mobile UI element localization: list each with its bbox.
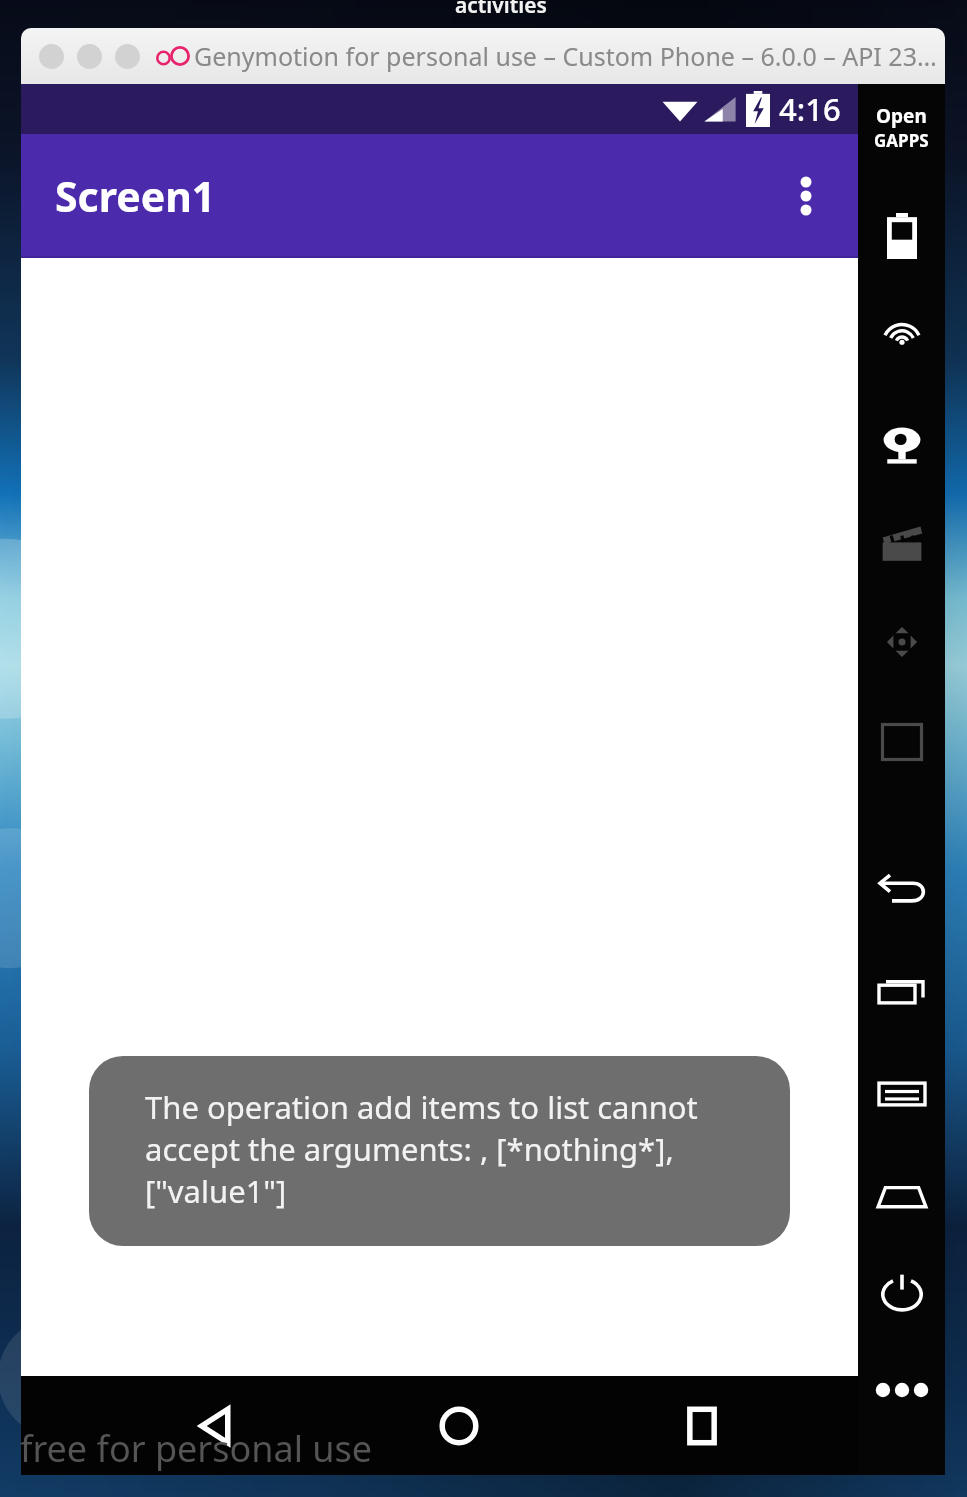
button[interactable]: Home [858,1170,945,1222]
staticText: 4:16 [779,88,841,130]
button[interactable]: GPS [858,320,945,372]
button[interactable] [115,44,140,69]
staticText: The operation add items to list cannot a… [145,1086,760,1212]
staticText: free for personal use [20,1424,373,1473]
button[interactable]: Back [858,864,945,916]
staticText: GAPPS [874,129,929,152]
staticText: activities [455,0,547,20]
button[interactable]: Home [412,1392,506,1460]
button[interactable]: Camera [858,420,945,472]
button[interactable]: Menu [858,1068,945,1120]
button[interactable] [39,44,64,69]
button[interactable]: Recent apps [858,966,945,1018]
button[interactable]: The operation add items to list cannot a… [89,1056,790,1246]
button[interactable]: Power [858,1268,945,1320]
button[interactable]: Identifiers [858,716,945,768]
staticText: Screen1 [55,168,216,224]
button[interactable]: Recent apps [655,1392,749,1460]
button[interactable]: More [858,1364,945,1416]
staticText: Genymotion for personal use – Custom Pho… [194,39,937,73]
button[interactable] [77,44,102,69]
button[interactable]: Open GAPPS [858,103,945,152]
button[interactable]: Back [169,1392,263,1460]
button[interactable]: Battery [858,210,945,262]
button[interactable]: Screen recorder [858,518,945,570]
button[interactable]: More options [774,164,838,228]
staticText: Open [876,103,927,129]
button[interactable]: Virtual sensors [858,616,945,668]
